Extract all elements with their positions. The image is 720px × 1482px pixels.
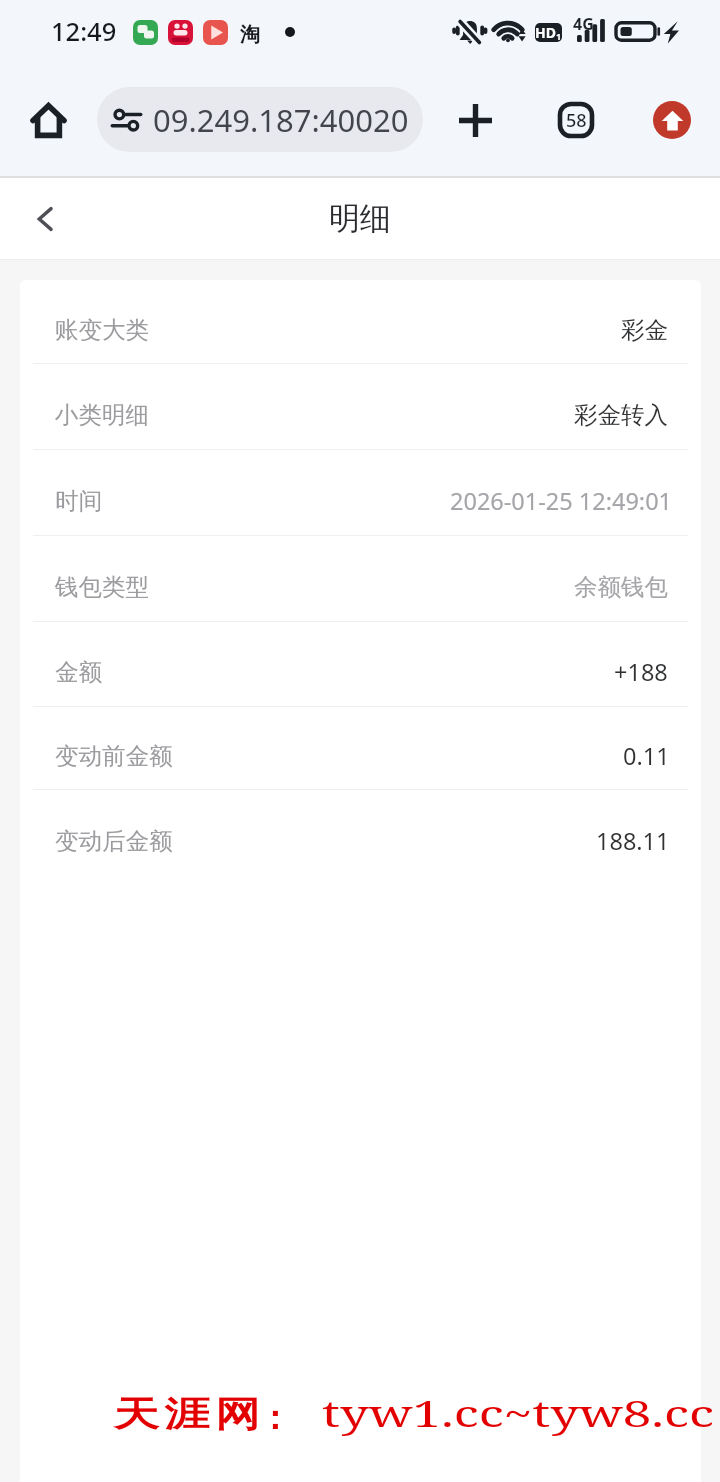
staticText: tyw1.cc~tyw8.cc bbox=[322, 1388, 715, 1438]
button[interactable]: 时间 bbox=[20, 450, 701, 536]
staticText: 188.11 bbox=[596, 825, 670, 857]
button[interactable]: Back bbox=[9, 183, 81, 255]
staticText: ： bbox=[258, 1397, 291, 1439]
button[interactable]: 钱包类型 bbox=[20, 536, 701, 622]
staticText: 天涯网 bbox=[111, 1392, 263, 1436]
staticText: 彩金 bbox=[621, 315, 668, 345]
staticText: 变动前金额 bbox=[55, 741, 173, 771]
staticText: 09.249.187:40020 bbox=[153, 99, 409, 141]
staticText: 2026-01-25 12:49:01 bbox=[450, 485, 673, 517]
staticText: 钱包类型 bbox=[55, 572, 149, 602]
staticText: 余额钱包 bbox=[574, 572, 668, 602]
staticText: 0.11 bbox=[623, 740, 670, 772]
staticText: 时间 bbox=[55, 486, 102, 516]
button[interactable]: 账变大类 bbox=[20, 280, 701, 364]
staticText: 明细 bbox=[329, 199, 391, 238]
staticText: 58 bbox=[566, 108, 587, 133]
staticText: 12:49 bbox=[51, 14, 117, 49]
button[interactable]: 变动后金额 bbox=[20, 790, 701, 875]
staticText: 1 bbox=[556, 30, 562, 42]
button[interactable]: Home bbox=[20, 92, 76, 148]
staticText: 小类明细 bbox=[55, 400, 149, 430]
button[interactable]: Update bbox=[653, 101, 691, 139]
staticText: 变动后金额 bbox=[55, 826, 173, 856]
staticText: 4G bbox=[573, 13, 594, 35]
staticText: 金额 bbox=[55, 657, 102, 687]
button[interactable]: 09.249.187:40020 bbox=[97, 87, 423, 152]
button[interactable]: 变动前金额 bbox=[20, 707, 701, 790]
staticText: +188 bbox=[614, 656, 668, 688]
staticText: 彩金转入 bbox=[574, 400, 668, 430]
button[interactable]: New tab bbox=[447, 92, 503, 148]
button[interactable]: 金额 bbox=[20, 622, 701, 707]
button[interactable]: Tabs bbox=[558, 102, 594, 138]
button[interactable]: 小类明细 bbox=[20, 364, 701, 450]
staticText: HD bbox=[535, 23, 556, 42]
staticText: 账变大类 bbox=[55, 315, 149, 345]
staticText: 淘 bbox=[240, 22, 260, 47]
